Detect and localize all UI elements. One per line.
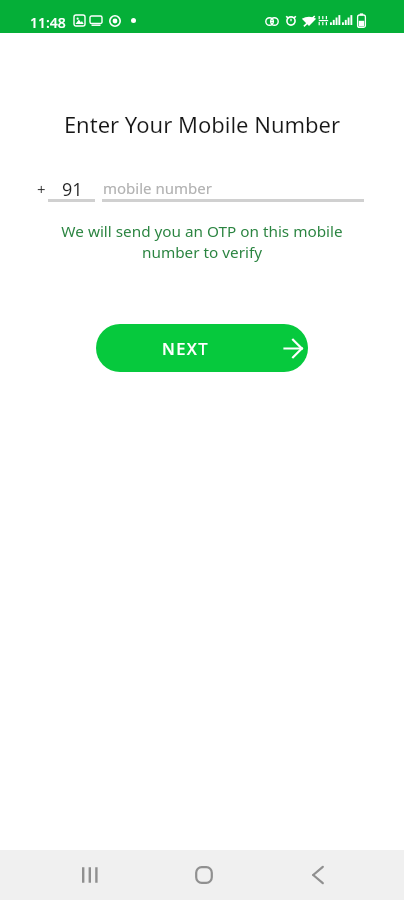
button[interactable]: Recent apps <box>65 850 116 900</box>
staticText: + <box>37 179 46 199</box>
staticText: mobile number <box>103 178 212 198</box>
staticText: 11:48 <box>30 13 66 32</box>
staticText: We will send you an OTP on this mobile n… <box>0 221 404 262</box>
staticText: NEXT <box>162 337 209 359</box>
button[interactable]: mobile number <box>102 172 364 202</box>
staticText: 91 <box>62 177 83 202</box>
staticText: Enter Your Mobile Number <box>0 109 404 139</box>
button[interactable]: NEXT <box>96 324 308 372</box>
button[interactable]: 91 <box>48 172 95 202</box>
button[interactable]: Back <box>292 850 343 900</box>
button[interactable]: Home <box>178 850 229 900</box>
